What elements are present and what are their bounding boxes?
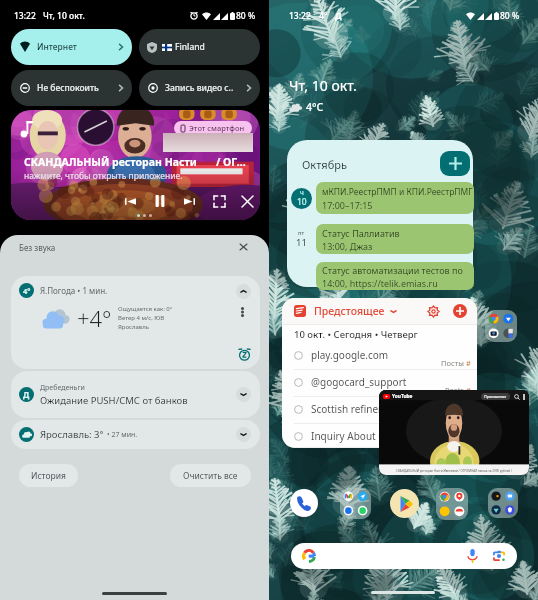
button[interactable]: Close	[236, 190, 258, 212]
staticText: #	[466, 358, 471, 368]
staticText: Scottish refineries	[311, 402, 396, 416]
button[interactable]: Очистить все	[170, 464, 251, 487]
button[interactable]: Folder	[485, 310, 517, 342]
staticText: Inquiry About G	[311, 429, 386, 443]
button[interactable]: Статус Паллиатив	[316, 224, 474, 254]
staticText: 4°	[23, 286, 31, 296]
staticText: play.google.com	[311, 348, 389, 362]
staticText: YouTube	[392, 393, 413, 400]
button[interactable]: Add event	[440, 151, 470, 176]
button[interactable]: Запись видео с..	[139, 70, 260, 106]
staticText: Интернет	[37, 41, 118, 53]
button[interactable]: Этот смартфон	[174, 121, 252, 135]
button[interactable]: Этот смартфон	[11, 110, 260, 220]
button[interactable]: play.google.com	[282, 343, 477, 370]
staticText: Посты	[441, 358, 464, 368]
button[interactable]: Д	[11, 371, 260, 418]
button[interactable]: Ярославль: 3°	[11, 420, 260, 449]
button[interactable]: 4°	[11, 276, 260, 369]
staticText: Предстоящее	[314, 304, 385, 318]
staticText: Я.Погода • 1 мин.	[40, 285, 108, 296]
button[interactable]: Expand	[236, 427, 251, 442]
staticText: нажмите, чтобы открыть приложение.	[24, 170, 183, 182]
staticText: 80 %	[500, 10, 520, 22]
staticText: Приложение	[484, 394, 507, 399]
staticText: История	[31, 470, 66, 482]
button[interactable]: Folder	[340, 488, 371, 519]
staticText: 13:00, Джаз	[322, 240, 373, 252]
staticText: Очистить все	[183, 470, 238, 482]
button[interactable]: Не беспокоить	[11, 70, 132, 106]
button[interactable]: Inquiry About G	[282, 424, 477, 448]
button[interactable]: Folder	[436, 488, 468, 520]
staticText: мКПИ.РеестрПМП и КПИ.РеестрПМГ	[322, 186, 473, 198]
staticText: СКАНДАЛЬНЫЙ ресторан Насти Ивлеевой / ОГ…	[396, 469, 513, 473]
staticText: 13:22	[289, 10, 311, 22]
staticText: Октябрь	[302, 157, 347, 172]
staticText: Ожидание PUSH/СМС от банков	[40, 394, 188, 407]
button[interactable]: Статус автоматизации тестов по про	[316, 262, 474, 290]
button[interactable]: История	[19, 464, 78, 487]
staticText: #	[466, 385, 471, 395]
button[interactable]: YouTube	[379, 390, 529, 475]
button[interactable]: Scottish refineries	[282, 397, 477, 424]
staticText: Статус Паллиатив	[322, 227, 400, 239]
staticText: 17:00–17:15	[322, 199, 373, 211]
staticText: • 27 мин.	[107, 430, 138, 440]
staticText: 13:22	[14, 10, 36, 22]
button[interactable]: Collapse	[236, 284, 251, 299]
staticText: Не беспокоить	[37, 82, 118, 94]
button[interactable]: мКПИ.РеестрПМП и КПИ.РеестрПМГ	[316, 182, 474, 214]
button[interactable]: Next	[178, 190, 200, 212]
staticText: Ч	[300, 189, 304, 196]
staticText: Д	[335, 10, 342, 22]
staticText: Без звука	[19, 242, 56, 253]
staticText: Этот смартфон	[189, 123, 245, 133]
staticText: Posts	[445, 385, 464, 395]
button[interactable]: Предстоящее	[282, 298, 477, 448]
button[interactable]: @gogocard_support	[282, 370, 477, 397]
button[interactable]	[287, 140, 473, 287]
staticText: 4°C	[306, 100, 324, 114]
staticText: Finland	[175, 41, 205, 53]
button[interactable]: Previous	[119, 190, 141, 212]
staticText: Ярославль	[118, 323, 150, 331]
button[interactable]: Folder	[488, 488, 518, 518]
button[interactable]: Интернет	[11, 29, 132, 65]
staticText: пт	[298, 229, 305, 236]
staticText: Ветер 4 м/с, ЮВ	[118, 314, 165, 322]
staticText: Д	[23, 389, 30, 400]
staticText: 11	[296, 236, 307, 249]
button[interactable]: Settings	[426, 304, 440, 318]
button[interactable]: Expand	[236, 387, 251, 402]
button[interactable]: Snooze	[237, 347, 251, 361]
button[interactable]: Pause	[149, 190, 171, 212]
staticText: 14:00, https://telik.emias.ru	[322, 277, 438, 289]
button[interactable]: More options	[236, 306, 248, 318]
staticText: / ОГ…	[216, 155, 246, 169]
staticText: +4°	[77, 303, 112, 333]
button[interactable]: Add task	[453, 304, 467, 318]
button[interactable]	[291, 543, 517, 569]
staticText: Ощущается как: 0°	[118, 305, 173, 313]
button[interactable]: Dismiss	[235, 239, 251, 255]
staticText: СКАНДАЛЬНЫЙ ресторан Насти	[24, 155, 197, 169]
staticText: 4°	[319, 10, 328, 22]
staticText: Ярославль: 3°	[40, 428, 104, 441]
staticText: Чт, 10 окт.	[43, 10, 85, 22]
staticText: Статус автоматизации тестов по про	[322, 264, 474, 276]
button[interactable]: Fullscreen	[208, 190, 230, 212]
button[interactable]: Play Store	[390, 489, 419, 518]
staticText: Дребеденьги	[40, 383, 85, 393]
staticText: Запись видео с..	[165, 82, 246, 94]
button[interactable]: Finland	[139, 29, 260, 65]
staticText: 80 %	[236, 10, 256, 22]
staticText: @gogocard_support	[311, 375, 407, 389]
staticText: 10 окт. • Сегодня • Четверг	[294, 328, 418, 341]
staticText: 10	[297, 196, 307, 208]
staticText: Чт, 10 окт.	[289, 76, 357, 95]
button[interactable]: Phone	[290, 489, 318, 517]
